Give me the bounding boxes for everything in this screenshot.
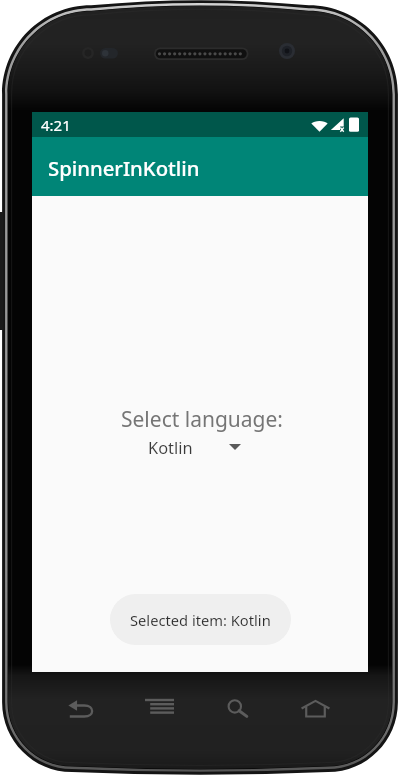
button[interactable]: Back [67, 698, 95, 720]
button[interactable]: Menu [145, 698, 174, 716]
button[interactable]: Kotlin [148, 436, 241, 458]
staticText: 4:21 [41, 115, 71, 135]
staticText: Selected item: Kotlin [130, 610, 271, 630]
button[interactable]: Search [224, 698, 248, 718]
staticText: Select language: [121, 405, 283, 434]
staticText: SpinnerInKotlin [48, 154, 200, 182]
button[interactable]: Home [301, 699, 330, 718]
button[interactable]: Selected item: Kotlin [110, 594, 291, 645]
staticText: Kotlin [148, 436, 193, 458]
